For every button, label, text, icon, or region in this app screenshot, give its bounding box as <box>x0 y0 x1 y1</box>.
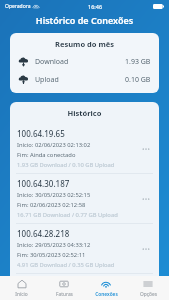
staticText: 100.64.30.187 <box>17 178 70 189</box>
staticText: Operadora <box>5 3 31 10</box>
staticText: 16:46 <box>88 3 103 10</box>
staticText: Opções <box>140 291 157 298</box>
staticText: 4.91 GB Download / 0.35 GB Upload <box>17 261 115 269</box>
staticText: 1.93 GB Download / 0.10 GB Upload <box>17 161 115 169</box>
button[interactable]: Mais opções <box>138 141 154 157</box>
staticText: 0.10 GB <box>125 75 151 85</box>
staticText: 100.64.19.65 <box>17 128 65 139</box>
staticText: Upload <box>35 75 59 85</box>
button[interactable]: Faturas <box>43 276 85 300</box>
button[interactable]: Mais opções <box>138 241 154 257</box>
staticText: Início: 30/05/2023 02:52:15 <box>17 191 91 199</box>
button[interactable]: 100.64.28.218 <box>10 224 159 273</box>
button[interactable]: Conexões <box>85 276 127 300</box>
staticText: Resumo do mês <box>18 39 151 49</box>
staticText: 1.93 GB <box>125 57 151 67</box>
staticText: Conexões <box>95 291 118 298</box>
staticText: 16.71 GB Download / 0.77 GB Upload <box>17 211 118 219</box>
staticText: Fim: Ainda conectado <box>17 151 76 159</box>
staticText: Histórico <box>10 108 159 118</box>
staticText: Início: 02/06/2023 02:13:02 <box>17 141 91 149</box>
staticText: Fim: 30/05/2023 02:52:11 <box>17 251 86 259</box>
staticText: Fim: 02/06/2023 02:12:58 <box>17 201 86 209</box>
staticText: Download <box>35 57 69 67</box>
staticText: 100.64.28.218 <box>17 228 70 239</box>
staticText: Faturas <box>56 291 73 298</box>
button[interactable]: 100.64.19.65 <box>10 124 159 173</box>
staticText: Início: 29/05/2023 04:33:12 <box>17 241 91 249</box>
button[interactable]: Mais opções <box>138 191 154 207</box>
button[interactable]: 100.64.30.187 <box>10 174 159 223</box>
staticText: Histórico de Conexões <box>0 14 169 26</box>
button[interactable]: Opções <box>127 276 169 300</box>
button[interactable]: Início <box>0 276 43 300</box>
staticText: Início <box>15 291 28 298</box>
